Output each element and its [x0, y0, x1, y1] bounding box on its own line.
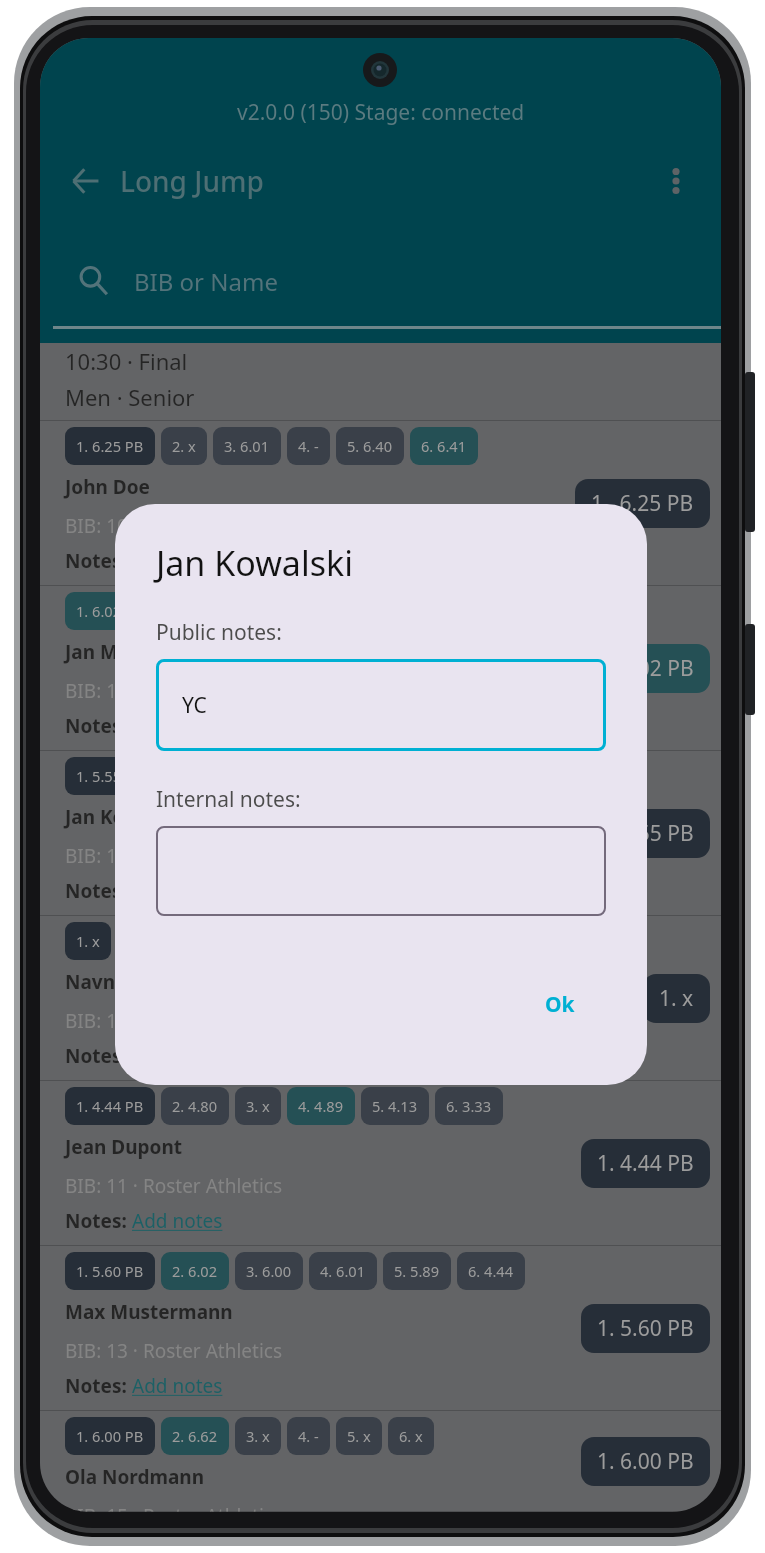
- staticText: 5. 4.13: [372, 1096, 418, 1116]
- staticText: Notes:: [65, 713, 132, 739]
- staticText: BIB: 11 · Roster Athletics: [65, 1173, 282, 1199]
- staticText: 4. 4.89: [298, 1096, 344, 1116]
- staticText: 2. 6.02 PB: [597, 654, 694, 683]
- button[interactable]: 1. 4.44 PB: [40, 1081, 721, 1246]
- staticText: Ok: [545, 990, 575, 1019]
- staticText: 6. 3.33: [446, 1096, 492, 1116]
- staticText: Notes:: [65, 878, 132, 904]
- staticText: BIB: 16 · Roster Athletics: [65, 1008, 282, 1034]
- staticText: 2. 4.80: [172, 1096, 218, 1116]
- staticText: 10:30 · Final: [65, 346, 188, 376]
- staticText: 2. x: [172, 436, 196, 456]
- staticText: Notes:: [65, 1043, 132, 1069]
- staticText: BIB: 15 · Roster Athletics: [65, 1503, 282, 1512]
- staticText: 3. 6.00: [246, 1261, 292, 1281]
- staticText: 1. x: [76, 931, 100, 951]
- staticText: 3. x: [246, 1426, 270, 1446]
- staticText: Navn Navnesen: [65, 969, 215, 995]
- staticText: Public notes:: [156, 618, 282, 647]
- button[interactable]: 1. 6.00 PB: [581, 1437, 710, 1486]
- button[interactable]: 1. 6.25 PB: [40, 421, 721, 586]
- staticText: BIB: 10 · Roster Athletics: [65, 513, 282, 539]
- staticText: 6. 4.44: [468, 1261, 514, 1281]
- staticText: YC: [182, 691, 207, 720]
- staticText: Men · Senior: [65, 382, 195, 412]
- staticText: 4. -: [298, 436, 319, 456]
- staticText: Long Jump: [120, 162, 264, 200]
- button[interactable]: 1. x: [40, 916, 721, 1081]
- staticText: 4. -: [298, 1426, 319, 1446]
- staticText: Notes:: [65, 1373, 132, 1399]
- staticText: 1. 6.00 PB: [597, 1447, 694, 1476]
- staticText: Jan Kowalski: [156, 540, 353, 586]
- staticText: BIB or Name: [134, 265, 278, 298]
- staticText: Add notes: [132, 1373, 223, 1399]
- staticText: Ola Nordmann: [65, 1464, 205, 1490]
- button[interactable]: 1. 6.02 PB: [40, 586, 721, 751]
- staticText: Internal notes:: [156, 785, 301, 814]
- staticText: 1. 6.25 PB: [76, 436, 144, 456]
- staticText: 1. 4.44 PB: [76, 1096, 144, 1116]
- staticText: Jean Dupont: [65, 1134, 183, 1160]
- button[interactable]: 1. 4.44 PB: [581, 1139, 710, 1188]
- staticText: Jan Kowalski: [65, 804, 185, 830]
- button[interactable]: 1. x: [643, 974, 710, 1023]
- button[interactable]: 1. 5.60 PB: [581, 1304, 710, 1353]
- staticText: 2. 6.62: [172, 1426, 218, 1446]
- staticText: 1. x: [659, 984, 694, 1013]
- button[interactable]: 1. 6.25 PB: [575, 479, 710, 528]
- staticText: Notes:: [65, 1208, 132, 1234]
- staticText: 3. x: [246, 1096, 270, 1116]
- staticText: BIB: 13 · Roster Athletics: [65, 1338, 282, 1364]
- staticText: Add notes: [132, 713, 223, 739]
- staticText: 5. 6.40: [347, 436, 393, 456]
- staticText: 4. 6.01: [320, 1261, 366, 1281]
- staticText: 1. 6.25 PB: [591, 489, 694, 518]
- staticText: 6. 6.41: [421, 436, 467, 456]
- staticText: BIB: 14 · Roster Athletics: [65, 843, 282, 869]
- staticText: 5. x: [347, 1426, 371, 1446]
- staticText: 1. 6.02 PB: [76, 601, 144, 621]
- button[interactable]: 1. 5.55 PB: [40, 751, 721, 916]
- staticText: 5. 5.89: [394, 1261, 440, 1281]
- staticText: 1. 5.55 PB: [76, 766, 144, 786]
- button[interactable]: 1. 5.55 PB: [581, 809, 710, 858]
- staticText: Add notes: [132, 548, 223, 574]
- staticText: Max Mustermann: [65, 1299, 233, 1325]
- staticText: 1. 4.44 PB: [597, 1149, 694, 1178]
- button[interactable]: 1. 6.00 PB: [40, 1411, 721, 1512]
- button[interactable]: Ok: [531, 978, 589, 1031]
- staticText: 1. 6.00 PB: [76, 1426, 144, 1446]
- staticText: 1. 5.60 PB: [597, 1314, 694, 1343]
- staticText: 1. 5.60 PB: [76, 1261, 144, 1281]
- staticText: Notes:: [65, 548, 132, 574]
- button[interactable]: 2. 6.02 PB: [581, 644, 710, 693]
- staticText: Add notes: [132, 878, 223, 904]
- staticText: v2.0.0 (150) Stage: connected: [237, 98, 525, 127]
- staticText: BIB: 12 · Roster Athletics: [65, 678, 282, 704]
- staticText: 3. 6.01: [224, 436, 270, 456]
- staticText: John Doe: [65, 474, 150, 500]
- staticText: 6. x: [399, 1426, 423, 1446]
- button[interactable]: Back: [63, 158, 109, 204]
- staticText: Add notes: [132, 1208, 223, 1234]
- button[interactable]: More options: [653, 158, 699, 204]
- staticText: Jan Mustermann: [65, 639, 223, 665]
- staticText: 2. 6.02: [172, 1261, 218, 1281]
- button[interactable]: 1. 5.60 PB: [40, 1246, 721, 1411]
- staticText: 1. 5.55 PB: [597, 819, 694, 848]
